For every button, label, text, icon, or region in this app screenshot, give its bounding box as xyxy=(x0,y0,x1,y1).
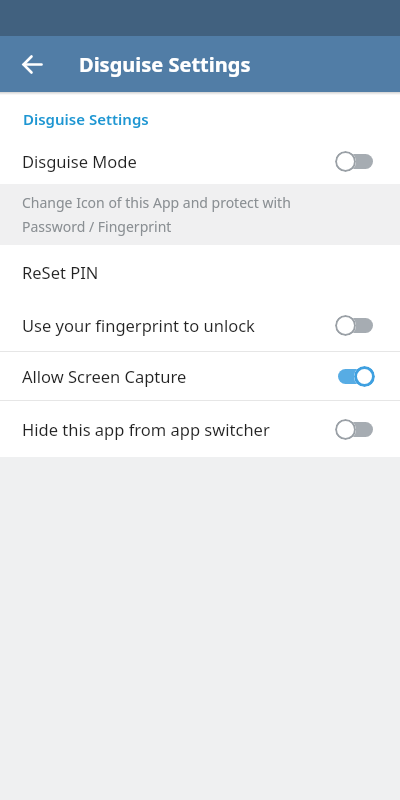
staticText: Disguise Mode xyxy=(22,150,137,172)
staticText: Change Icon of this App and protect with xyxy=(22,193,291,212)
button[interactable]: Use your fingerprint to unlock xyxy=(0,299,400,351)
staticText: ReSet PIN xyxy=(22,261,99,283)
staticText: Hide this app from app switcher xyxy=(22,418,270,440)
staticText: Password / Fingerprint xyxy=(22,217,172,236)
staticText: Allow Screen Capture xyxy=(22,365,187,387)
staticText: Use your fingerprint to unlock xyxy=(22,314,255,336)
button[interactable]: Hide this app from app switcher xyxy=(0,401,400,457)
button[interactable]: Allow Screen Capture xyxy=(0,352,400,400)
staticText: Disguise Settings xyxy=(79,51,251,78)
button[interactable]: ReSet PIN xyxy=(0,245,400,299)
button[interactable]: Disguise Mode xyxy=(0,138,400,184)
button[interactable] xyxy=(0,36,64,92)
staticText: Disguise Settings xyxy=(23,109,149,129)
